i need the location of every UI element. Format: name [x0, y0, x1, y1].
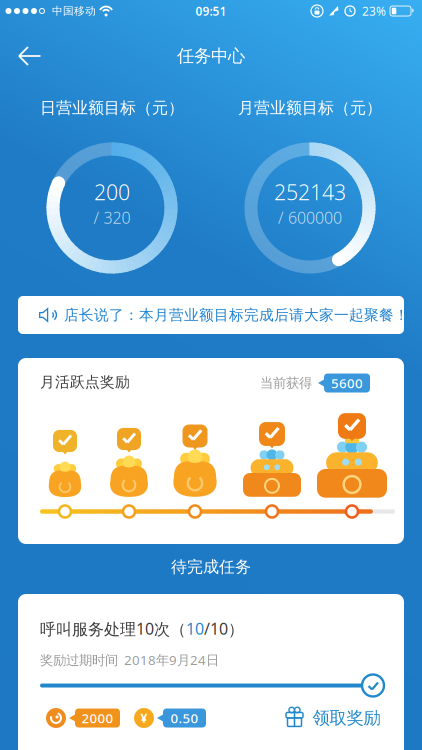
staticText: 10 — [186, 618, 204, 639]
button[interactable]: Back — [10, 36, 50, 76]
staticText: /10） — [204, 618, 244, 639]
staticText: 日营业额目标（元） — [40, 98, 184, 118]
staticText: 0.50 — [170, 709, 198, 727]
staticText: 中国移动 — [52, 4, 96, 17]
staticText: ¥ — [140, 710, 147, 726]
staticText: 月营业额目标（元） — [238, 98, 382, 118]
staticText: 当前获得 — [260, 375, 312, 391]
staticText: 奖励过期时间 2018年9月24日 — [40, 651, 219, 669]
staticText: / 600000 — [278, 207, 342, 228]
staticText: 5600 — [331, 374, 363, 392]
staticText: 呼叫服务处理10次（ — [40, 618, 186, 639]
button[interactable]: 领取奖励 — [283, 707, 380, 729]
staticText: 店长说了：本月营业额目标完成后请大家一起聚餐！ — [64, 306, 409, 324]
staticText: 23% — [362, 3, 386, 19]
staticText: 252143 — [274, 178, 346, 206]
staticText: 领取奖励 — [312, 707, 380, 729]
staticText: 待完成任务 — [171, 557, 251, 577]
staticText: 09:51 — [195, 3, 226, 19]
staticText: 2000 — [81, 709, 113, 727]
staticText: 任务中心 — [177, 45, 245, 67]
staticText: 月活跃点奖励 — [40, 373, 130, 391]
staticText: 200 — [94, 178, 130, 206]
staticText: / 320 — [93, 207, 130, 228]
